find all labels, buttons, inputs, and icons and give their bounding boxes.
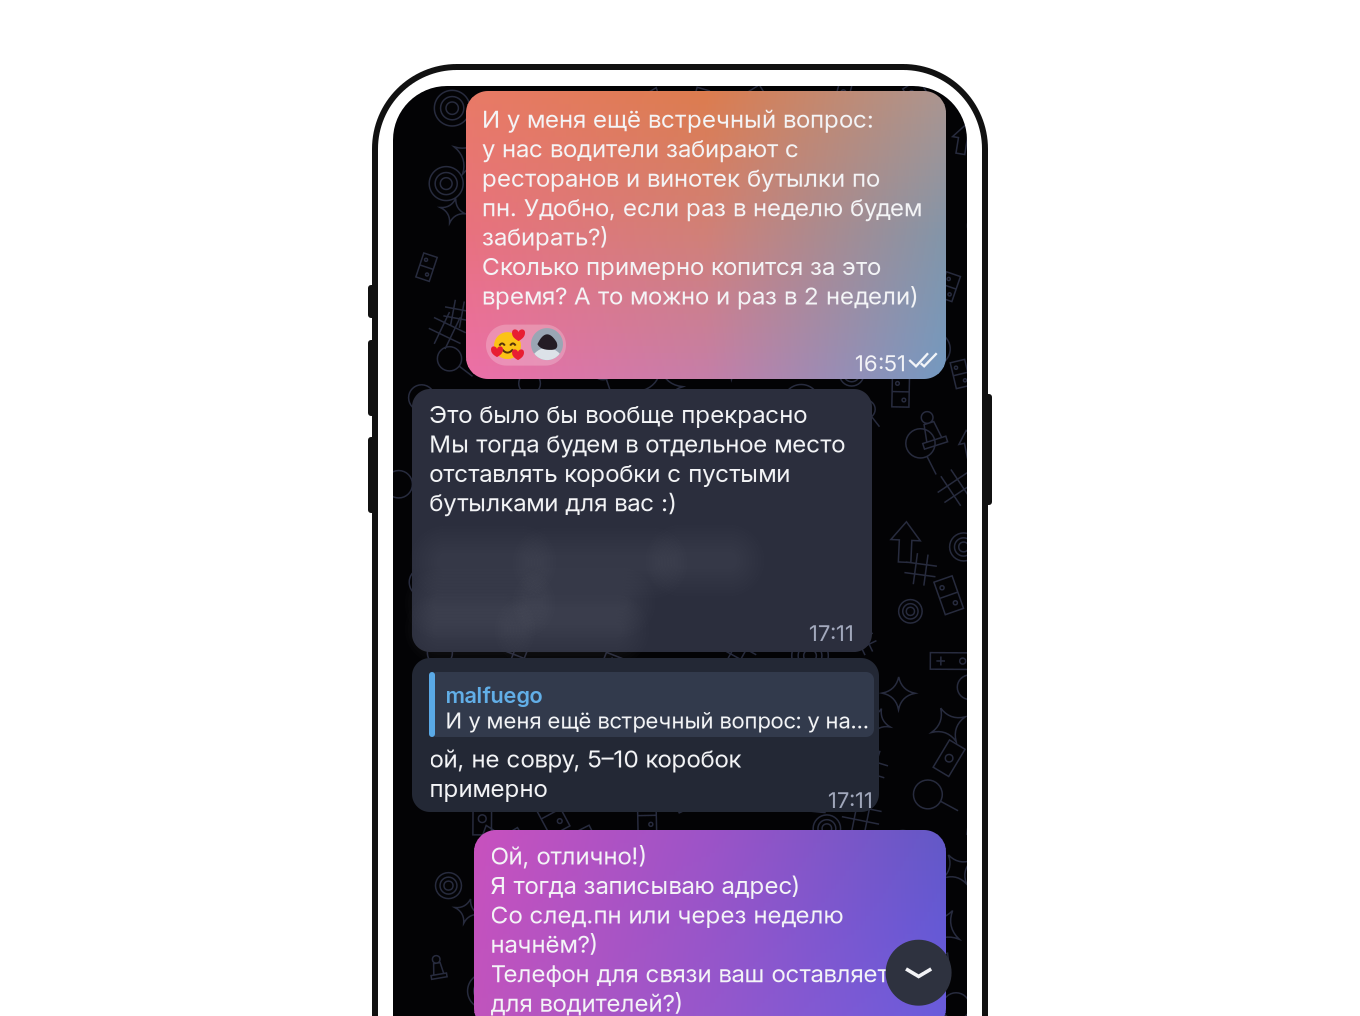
staticText: Я тогда записываю адрес) bbox=[490, 870, 799, 900]
staticText: для водителей?) bbox=[490, 988, 682, 1016]
staticText: Ой, отлично!) bbox=[490, 841, 646, 870]
staticText: Мы тогда будем в отдельное место bbox=[429, 429, 845, 458]
staticText: 17:11 bbox=[809, 620, 854, 647]
staticText: Это было бы вообще прекрасно bbox=[429, 399, 807, 429]
staticText: 16:51 bbox=[855, 350, 906, 377]
staticText: ресторанов и винотек бутылки по bbox=[482, 163, 880, 193]
staticText: Телефон для связи ваш оставляете bbox=[490, 959, 902, 988]
staticText: Со след.пн или через неделю bbox=[490, 900, 843, 929]
staticText: malfuego bbox=[445, 682, 542, 708]
staticText: Сколько примерно копится за это bbox=[482, 252, 881, 281]
staticText: время? А то можно и раз в 2 недели) bbox=[482, 281, 918, 310]
staticText: ой, не совру, 5–10 коробок bbox=[429, 744, 741, 773]
button[interactable]: malfuego bbox=[412, 658, 879, 812]
staticText: отставлять коробки с пустыми bbox=[429, 458, 790, 488]
staticText: начнём?) bbox=[490, 929, 597, 959]
staticText: бутылками для вас :) bbox=[429, 488, 676, 517]
button[interactable]: И у меня ещё встречный вопрос: bbox=[466, 91, 946, 379]
button[interactable]: Scroll to bottom bbox=[886, 940, 952, 1006]
staticText: у нас водители забирают с bbox=[482, 134, 799, 163]
staticText: пн. Удобно, если раз в неделю будем bbox=[482, 193, 922, 222]
staticText: примерно bbox=[429, 773, 547, 803]
staticText: забирать?) bbox=[482, 222, 608, 251]
staticText: И у меня ещё встречный вопрос: у на… bbox=[445, 707, 868, 734]
button[interactable]: Ой, отлично!) bbox=[474, 830, 946, 1016]
button[interactable]: Это было бы вообще прекрасно bbox=[412, 389, 872, 652]
staticText: 17:11 bbox=[828, 787, 873, 814]
staticText: И у меня ещё встречный вопрос: bbox=[482, 104, 874, 134]
